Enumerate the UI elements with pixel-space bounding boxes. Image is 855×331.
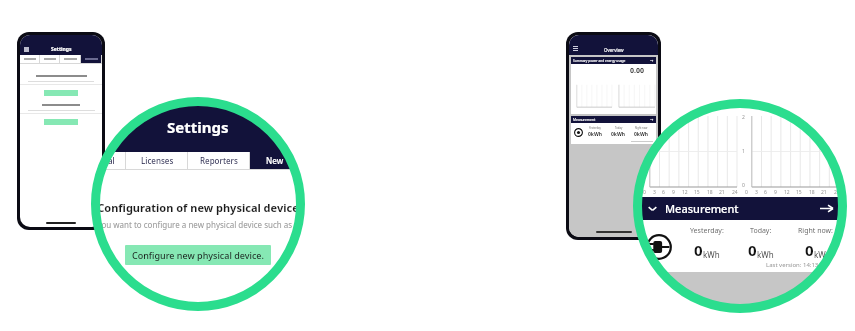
staticText: Right now: — [798, 226, 833, 236]
staticText: 0 — [805, 240, 814, 260]
staticText: 0 — [694, 240, 703, 260]
staticText: Measurement — [573, 117, 596, 122]
staticText: 9 — [672, 189, 675, 196]
button[interactable]: Menu — [573, 46, 578, 52]
staticText: 3 — [653, 189, 656, 196]
staticText: 18 — [707, 189, 713, 196]
staticText: Last version: 14:13 — [766, 261, 820, 269]
staticText: 21 — [821, 189, 827, 196]
staticText: Licenses — [141, 155, 174, 166]
button[interactable]: New — [250, 152, 300, 169]
staticText: 9 — [774, 189, 777, 196]
staticText: Right now — [635, 126, 648, 130]
other: Measurement device — [646, 234, 672, 260]
staticText: → — [650, 117, 654, 122]
staticText: 18 — [809, 189, 815, 196]
staticText: 0kWh — [588, 131, 603, 138]
staticText: kW — [814, 249, 826, 260]
button[interactable]: Licenses — [126, 152, 188, 169]
staticText: 15 — [796, 189, 802, 196]
staticText: 24 — [834, 189, 840, 196]
staticText: 0kWh — [634, 131, 649, 138]
staticText: 21 — [719, 189, 725, 196]
staticText: Configuration of new physical device — [97, 200, 299, 215]
staticText: kWh — [703, 249, 720, 260]
staticText: Today — [615, 126, 623, 130]
staticText: al — [108, 155, 115, 166]
staticText: you want to configure a new physical dev… — [97, 219, 299, 230]
staticText: 2 — [640, 114, 643, 121]
staticText: r day (kWh) — [670, 105, 708, 115]
button[interactable]: Collapse — [638, 197, 842, 220]
button[interactable]: al — [96, 152, 126, 169]
button[interactable]: Reporters — [188, 152, 250, 169]
staticText: Yesterday — [589, 126, 601, 130]
staticText: 0kWh — [611, 131, 626, 138]
button[interactable] — [40, 55, 60, 63]
other: Collapse — [647, 203, 658, 214]
staticText: 2 — [742, 114, 745, 121]
staticText: Settings — [51, 46, 72, 53]
staticText: New — [266, 155, 284, 166]
staticText: Summary power and energy usage — [573, 59, 626, 63]
staticText: Today: — [750, 226, 772, 236]
staticText: Measurement — [665, 201, 739, 216]
staticText: 24 — [732, 189, 738, 196]
staticText: 12 — [682, 189, 688, 196]
button[interactable]: Summary power and energy usage — [571, 57, 656, 64]
staticText: 15 — [694, 189, 700, 196]
staticText: 3 — [755, 189, 758, 196]
staticText: 0.00 — [630, 66, 644, 76]
button[interactable]: Measurement — [571, 116, 656, 123]
other: Open measurement — [820, 202, 833, 215]
staticText: kWh — [757, 249, 774, 260]
staticText: Reporters — [200, 155, 238, 166]
button[interactable]: Configure new physical device. — [125, 245, 271, 265]
staticText: Settings — [167, 117, 229, 137]
button[interactable] — [20, 55, 40, 63]
staticText: 1 — [742, 148, 745, 155]
staticText: → — [650, 58, 654, 63]
staticText: 0 — [745, 189, 748, 196]
staticText: 6 — [662, 189, 665, 196]
staticText: Total pow — [775, 105, 807, 115]
button[interactable] — [60, 55, 81, 63]
staticText: 0 — [643, 189, 646, 196]
staticText: Configure new physical device. — [132, 249, 264, 261]
staticText: Overview — [604, 47, 624, 53]
staticText: 12 — [784, 189, 790, 196]
staticText: 0 — [748, 240, 757, 260]
staticText: 6 — [764, 189, 767, 196]
staticText: Yesterday: — [690, 226, 724, 236]
staticText: 20:40 — [820, 261, 836, 269]
staticText: 0 — [742, 182, 745, 189]
button[interactable] — [81, 55, 102, 63]
